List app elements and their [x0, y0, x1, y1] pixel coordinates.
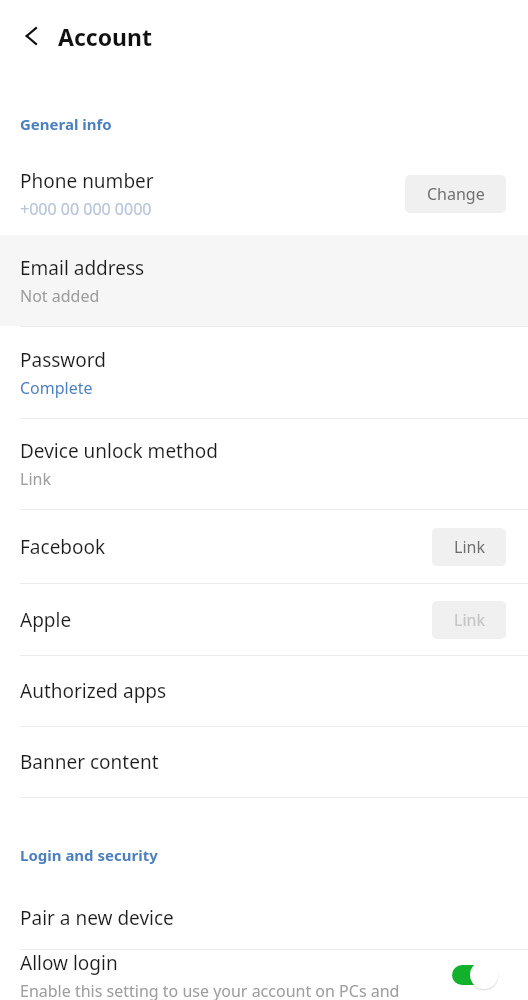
staticText: Pair a new device — [20, 905, 174, 931]
staticText: Change — [427, 183, 485, 205]
staticText: +000 00 000 0000 — [20, 198, 152, 220]
button[interactable]: Back — [10, 14, 54, 58]
staticText: Apple — [20, 607, 72, 633]
staticText: Allow login — [20, 950, 118, 976]
staticText: Not added — [20, 285, 100, 307]
button[interactable]: Apple — [0, 584, 528, 655]
button[interactable]: Password — [0, 327, 528, 418]
staticText: Link — [454, 536, 485, 558]
staticText: Link — [454, 609, 485, 631]
staticText: Enable this setting to use your account … — [20, 980, 400, 1000]
button[interactable]: Phone number — [0, 153, 528, 235]
button[interactable]: Allow login — [0, 950, 528, 1000]
button[interactable]: Link — [432, 601, 506, 639]
button[interactable]: Allow login toggle — [452, 958, 506, 992]
staticText: General info — [20, 114, 112, 134]
button[interactable]: Facebook — [0, 510, 528, 583]
staticText: Facebook — [20, 534, 106, 560]
staticText: Authorized apps — [20, 678, 167, 704]
staticText: Password — [20, 347, 106, 373]
button[interactable]: Banner content — [0, 727, 528, 797]
button[interactable]: Device unlock method — [0, 419, 528, 509]
staticText: Device unlock method — [20, 438, 218, 464]
button[interactable]: Link — [432, 528, 506, 566]
staticText: Account — [58, 21, 152, 52]
staticText: Phone number — [20, 168, 154, 194]
button[interactable]: Authorized apps — [0, 656, 528, 726]
staticText: Email address — [20, 255, 145, 281]
staticText: Banner content — [20, 749, 159, 775]
button[interactable]: Email address — [0, 235, 528, 326]
staticText: Link — [20, 468, 51, 490]
button[interactable]: Pair a new device — [0, 887, 528, 949]
button[interactable]: Change — [405, 175, 506, 213]
staticText: Login and security — [20, 845, 158, 865]
staticText: Complete — [20, 377, 93, 399]
